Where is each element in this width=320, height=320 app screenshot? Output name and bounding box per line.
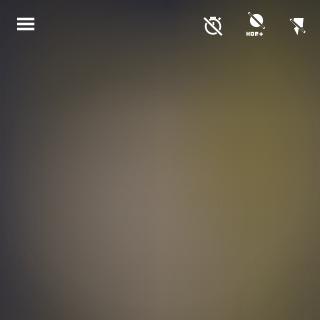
button[interactable]: HDR Plus off	[236, 2, 278, 46]
button[interactable]: Self-timer off	[193, 2, 233, 46]
button[interactable]: Flash off	[278, 2, 318, 46]
button[interactable]: Menu	[2, 2, 50, 46]
